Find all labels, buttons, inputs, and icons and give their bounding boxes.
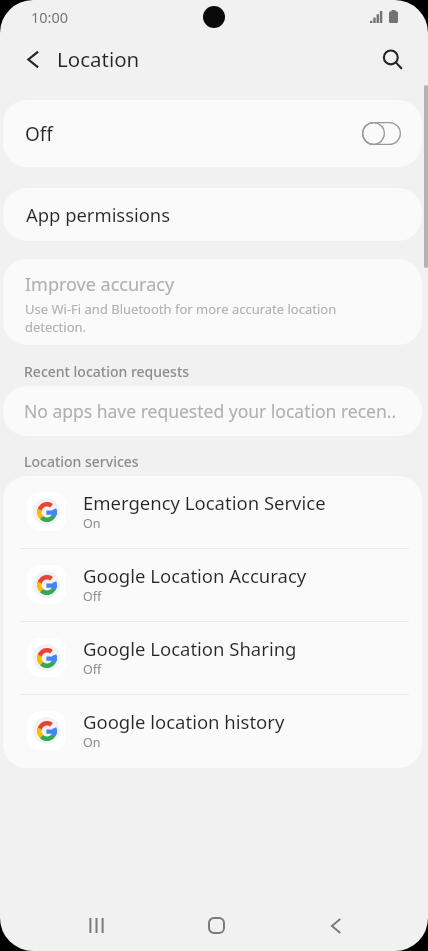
button[interactable]: Emergency Location Service xyxy=(3,476,422,549)
button[interactable]: Home xyxy=(190,900,242,951)
staticText: Off xyxy=(83,588,102,605)
staticText: App permissions xyxy=(26,202,171,227)
staticText: Google Location Sharing xyxy=(83,636,297,661)
button[interactable]: Google Location Accuracy xyxy=(3,549,422,622)
staticText: Off xyxy=(25,121,53,147)
button[interactable]: Off xyxy=(3,100,422,167)
staticText: Location xyxy=(57,45,140,73)
button[interactable]: Navigate up xyxy=(14,40,52,78)
staticText: Google Location Accuracy xyxy=(83,563,307,588)
button[interactable]: App permissions xyxy=(3,188,422,241)
staticText: Use Wi-Fi and Bluetooth for more accurat… xyxy=(25,300,397,336)
staticText: No apps have requested your location rec… xyxy=(24,399,397,423)
staticText: On xyxy=(83,515,101,532)
staticText: Location services xyxy=(24,452,139,471)
staticText: Recent location requests xyxy=(24,362,190,381)
staticText: Improve accuracy xyxy=(25,272,175,297)
button[interactable]: Back xyxy=(310,900,362,951)
staticText: Off xyxy=(83,661,102,678)
button[interactable]: Google Location Sharing xyxy=(3,622,422,695)
staticText: Emergency Location Service xyxy=(83,490,326,515)
button[interactable]: Google location history xyxy=(3,695,422,768)
staticText: On xyxy=(83,734,101,751)
button[interactable]: Search xyxy=(372,39,412,79)
staticText: 10:00 xyxy=(31,7,69,27)
button[interactable]: Recents xyxy=(70,900,122,951)
staticText: Google location history xyxy=(83,709,285,734)
